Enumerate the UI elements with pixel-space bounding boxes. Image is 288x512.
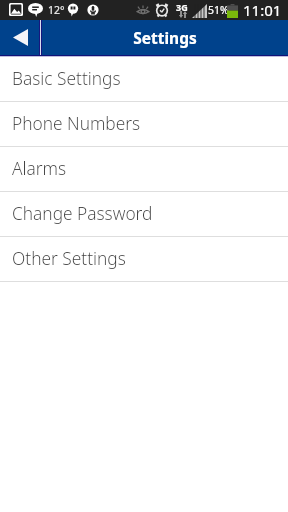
staticText: 3G (176, 1, 188, 13)
staticText: 12° (48, 3, 65, 17)
staticText: 51% (208, 3, 229, 17)
button[interactable]: Alarms (0, 147, 288, 191)
staticText: Settings (133, 27, 197, 48)
staticText: Other Settings (12, 247, 126, 271)
staticText: Alarms (12, 157, 67, 181)
staticText: Basic Settings (12, 67, 121, 91)
staticText: Change Password (12, 202, 153, 226)
button[interactable]: Phone Numbers (0, 102, 288, 146)
button[interactable]: Other Settings (0, 237, 288, 281)
staticText: 11:01 (243, 0, 282, 20)
button[interactable]: Basic Settings (0, 57, 288, 101)
staticText: Phone Numbers (12, 112, 141, 136)
button[interactable]: Back (0, 20, 41, 55)
button[interactable]: Change Password (0, 192, 288, 236)
